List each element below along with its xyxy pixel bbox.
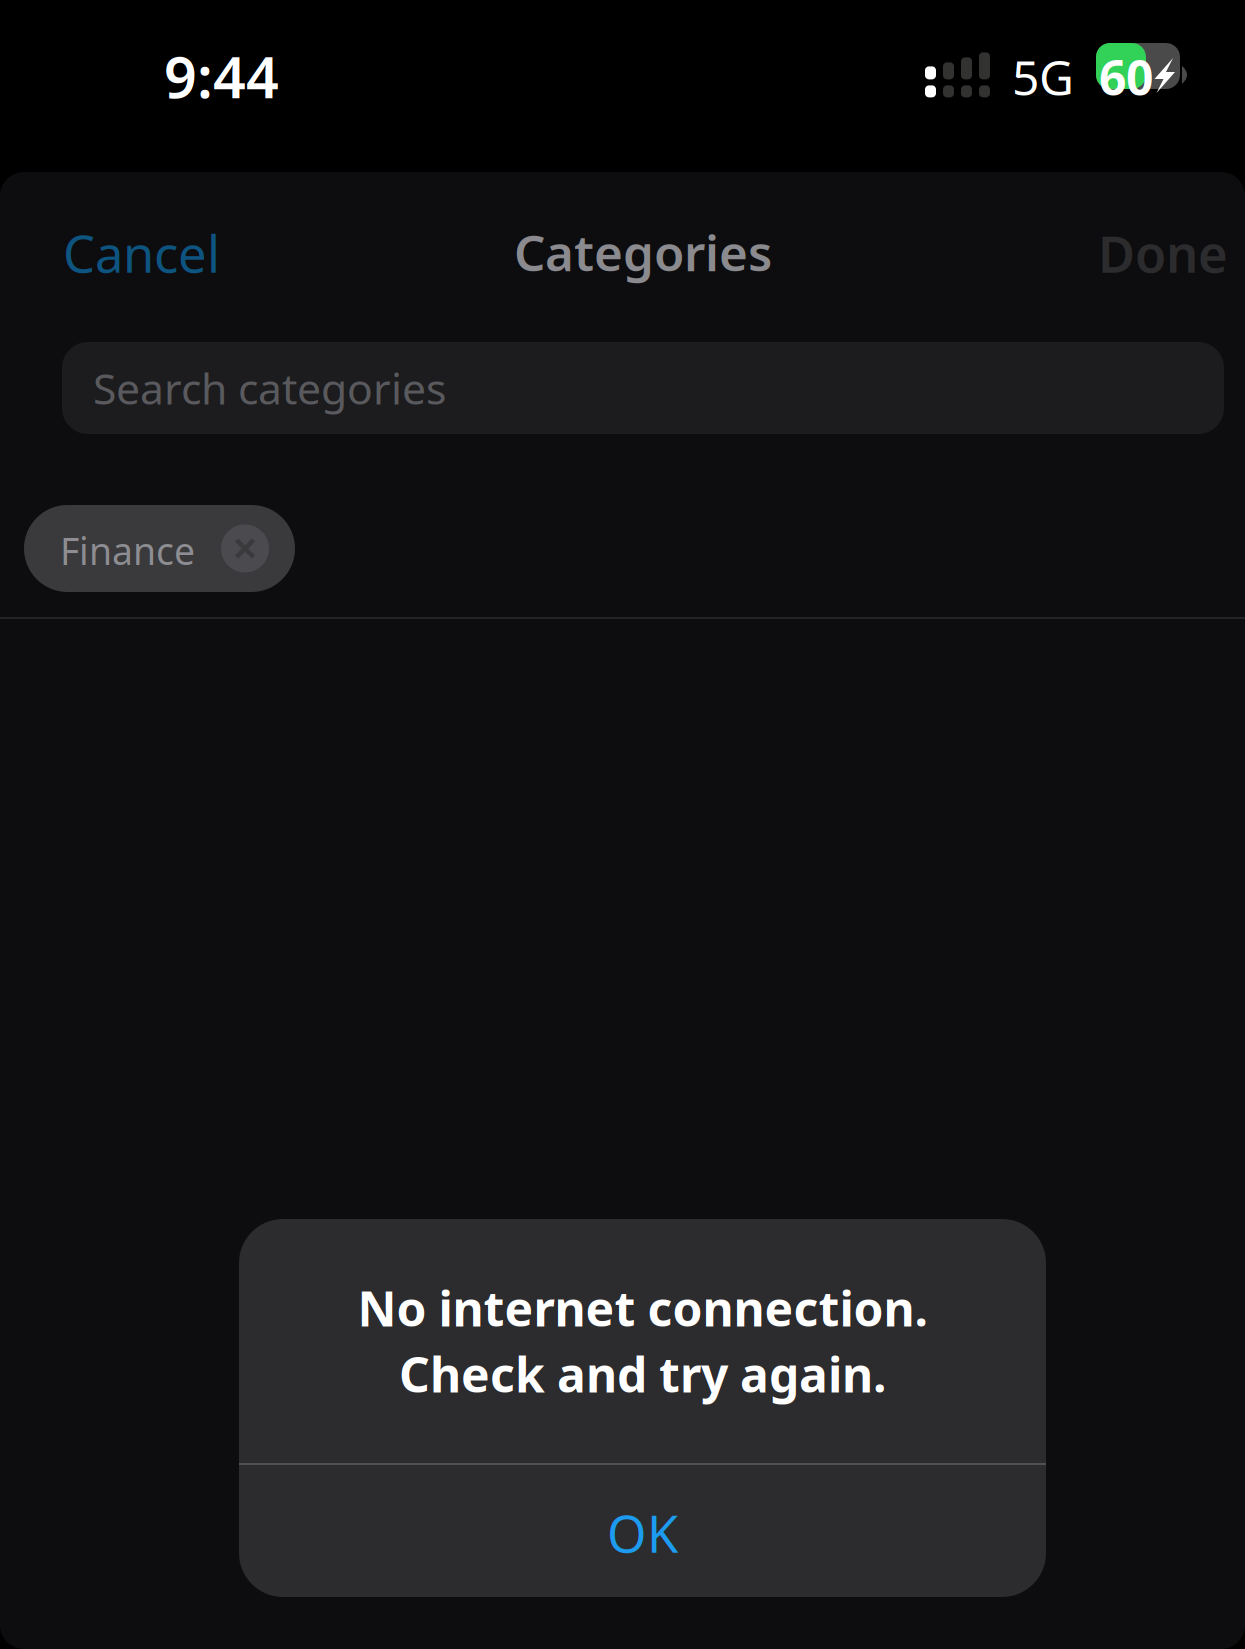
button[interactable]: Done	[1084, 201, 1242, 305]
staticText: Check and try again.	[399, 1342, 886, 1406]
staticText: Done	[1098, 219, 1228, 287]
staticText: 5G	[1012, 45, 1074, 109]
staticText: 9:44	[164, 38, 279, 114]
button[interactable]: OK	[239, 1467, 1046, 1599]
staticText: Cancel	[63, 219, 220, 287]
staticText: Search categories	[93, 360, 446, 416]
staticText: 60	[1099, 45, 1153, 109]
staticText: Finance	[60, 526, 195, 575]
button[interactable]: Remove Finance	[221, 524, 269, 572]
staticText: No internet connection.	[357, 1276, 927, 1340]
staticText: OK	[607, 1499, 678, 1567]
button[interactable]: Search categories	[62, 342, 1224, 434]
staticText: Categories	[514, 219, 772, 285]
button[interactable]: Cancel	[49, 201, 234, 305]
